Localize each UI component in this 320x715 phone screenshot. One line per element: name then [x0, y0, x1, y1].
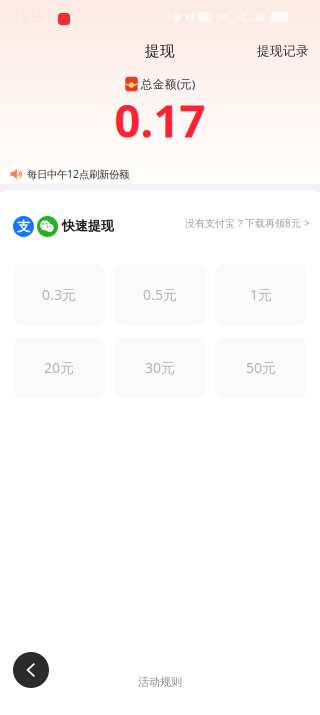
- staticText: 每日中午12点刷新份额: [27, 167, 129, 181]
- staticText: 30元: [145, 358, 175, 377]
- button[interactable]: 30元: [114, 337, 206, 398]
- staticText: 活动规则: [138, 675, 182, 689]
- button[interactable]: 50元: [215, 337, 307, 398]
- staticText: 50元: [246, 358, 276, 377]
- staticText: 20元: [44, 358, 74, 377]
- button[interactable]: 提现记录: [246, 36, 320, 66]
- staticText: 0.3元: [42, 285, 76, 304]
- button[interactable]: 没有支付宝？下载再领8元 >: [185, 212, 310, 234]
- button[interactable]: 0.3元: [13, 264, 105, 325]
- staticText: 快速提现: [62, 218, 114, 234]
- button[interactable]: 20元: [13, 337, 105, 398]
- staticText: 1元: [250, 285, 272, 304]
- staticText: 支: [17, 218, 30, 235]
- staticText: 0.5元: [143, 285, 177, 304]
- staticText: 提现: [145, 42, 175, 60]
- staticText: 提现记录: [257, 43, 309, 59]
- staticText: 总金额(元): [141, 76, 195, 92]
- button[interactable]: 0.5元: [114, 264, 206, 325]
- staticText: 没有支付宝？下载再领8元 >: [185, 216, 310, 230]
- button[interactable]: Back: [13, 652, 49, 688]
- staticText: 0.17: [114, 89, 205, 151]
- button[interactable]: 1元: [215, 264, 307, 325]
- button[interactable]: 活动规则: [0, 670, 320, 694]
